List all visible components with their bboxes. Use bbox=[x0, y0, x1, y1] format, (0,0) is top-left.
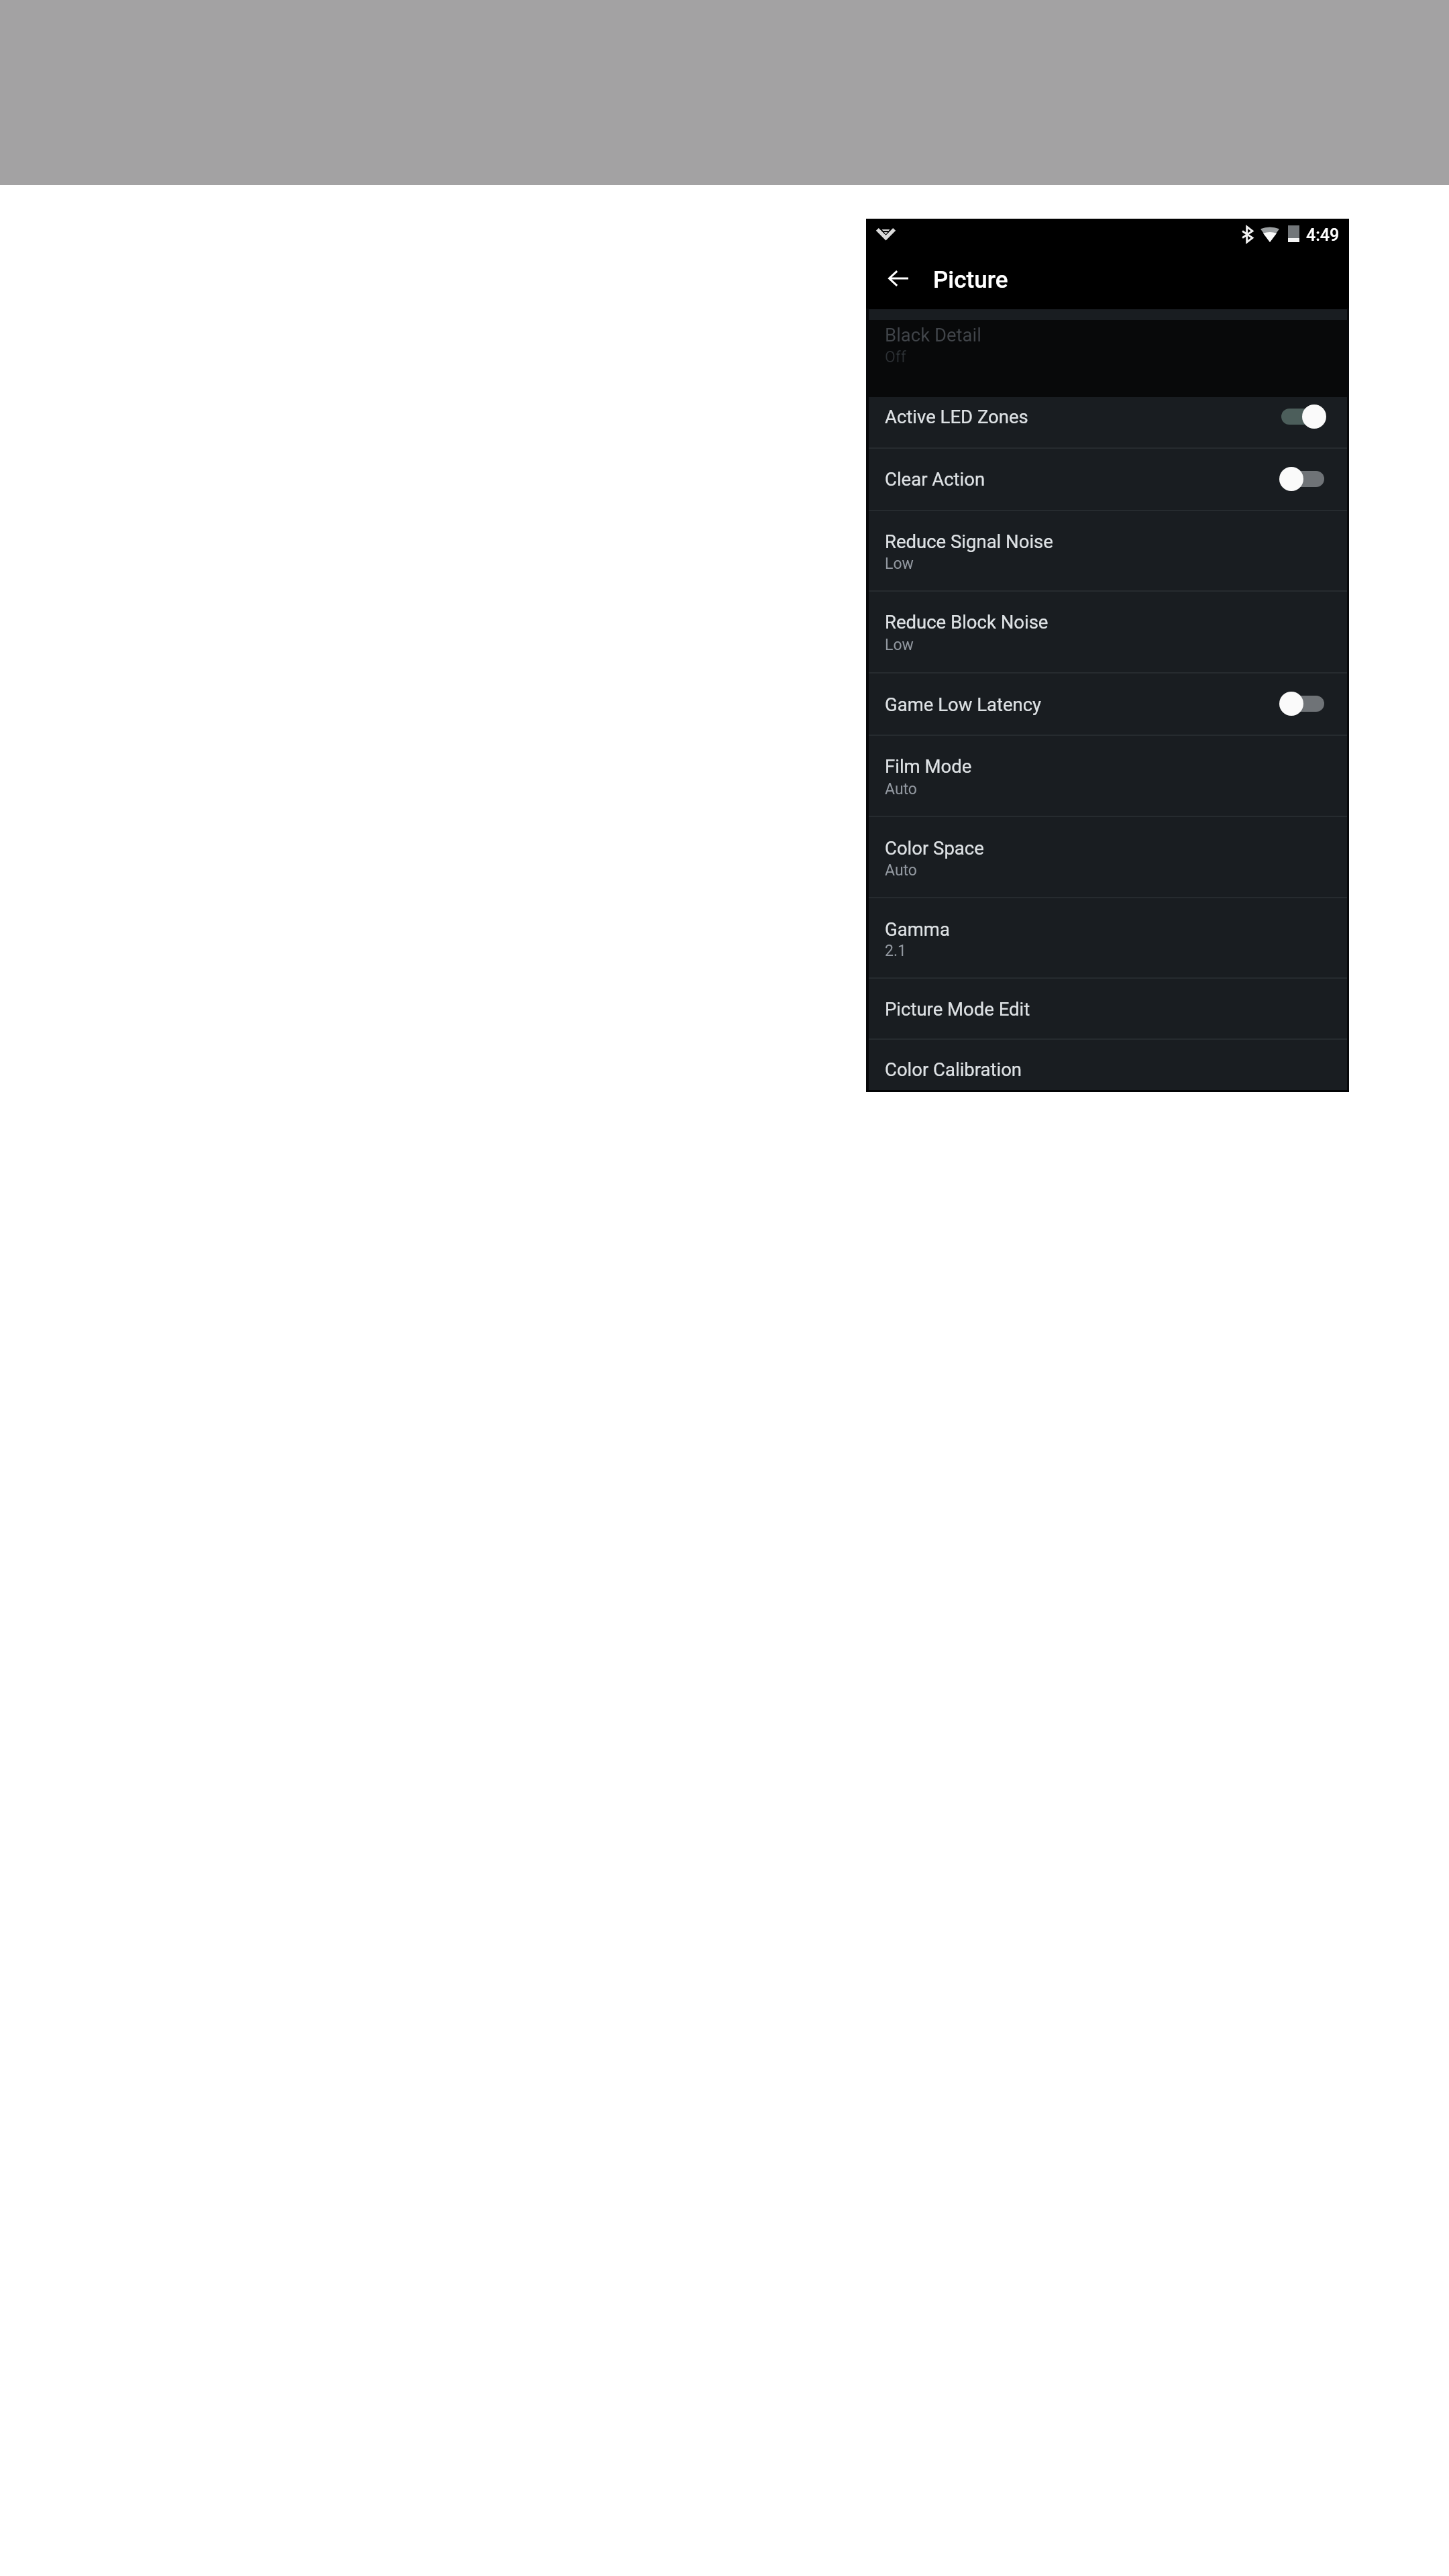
button[interactable]: Picture Mode Edit bbox=[866, 977, 1349, 1038]
button[interactable]: Reduce Block Noise bbox=[866, 590, 1349, 672]
staticText: Active LED Zones bbox=[885, 406, 1028, 427]
button[interactable]: Switch on bbox=[1279, 403, 1326, 430]
button[interactable]: Switch off bbox=[1279, 466, 1326, 492]
staticText: Film Mode bbox=[885, 755, 972, 777]
button[interactable]: Switch off bbox=[1279, 690, 1326, 717]
button[interactable]: Game Low Latency bbox=[866, 672, 1349, 735]
staticText: Reduce Signal Noise bbox=[885, 531, 1053, 552]
staticText: Auto bbox=[885, 780, 917, 798]
staticText: 2.1 bbox=[885, 942, 906, 960]
staticText: Low bbox=[885, 636, 914, 654]
button[interactable]: Film Mode bbox=[866, 735, 1349, 816]
button[interactable]: Gamma bbox=[866, 897, 1349, 977]
button[interactable]: Navigate up bbox=[879, 259, 918, 298]
staticText: Picture bbox=[933, 266, 1008, 294]
staticText: 4:49 bbox=[1306, 225, 1340, 245]
button[interactable]: Black Detail bbox=[866, 320, 1349, 397]
staticText: Clear Action bbox=[885, 468, 985, 490]
staticText: Auto bbox=[885, 861, 917, 879]
staticText: Gamma bbox=[885, 918, 950, 940]
staticText: Game Low Latency bbox=[885, 694, 1042, 715]
button[interactable]: Reduce Signal Noise bbox=[866, 510, 1349, 590]
staticText: Color Space bbox=[885, 837, 984, 859]
staticText: Black Detail bbox=[885, 324, 981, 345]
staticText: Off bbox=[885, 348, 906, 366]
button[interactable]: Color Space bbox=[866, 816, 1349, 897]
staticText: Low bbox=[885, 555, 914, 573]
staticText: Reduce Block Noise bbox=[885, 611, 1049, 633]
staticText: Color Calibration bbox=[885, 1059, 1022, 1080]
staticText: Picture Mode Edit bbox=[885, 998, 1030, 1020]
button[interactable]: Active LED Zones bbox=[866, 397, 1349, 447]
button[interactable]: Clear Action bbox=[866, 447, 1349, 510]
button[interactable]: Color Calibration bbox=[866, 1038, 1349, 1092]
